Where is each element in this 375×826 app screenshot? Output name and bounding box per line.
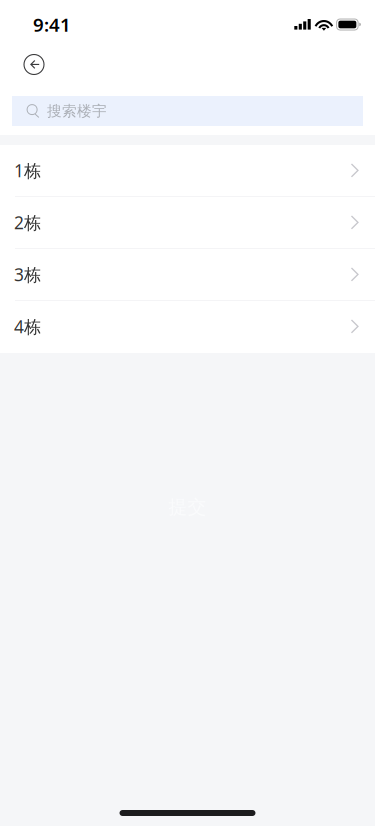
button[interactable]: 搜索楼宇 (12, 96, 363, 126)
staticText: 搜索楼宇 (47, 102, 107, 120)
button[interactable]: 2栋 (0, 197, 375, 249)
staticText: 9:41 (33, 12, 71, 37)
staticText: 3栋 (14, 263, 41, 286)
button[interactable]: 1栋 (0, 145, 375, 197)
staticText: 1栋 (14, 159, 41, 182)
button[interactable]: Back (12, 46, 56, 82)
button[interactable]: 3栋 (0, 249, 375, 301)
staticText: 4栋 (14, 315, 41, 338)
button[interactable]: 4栋 (0, 301, 375, 353)
staticText: 2栋 (14, 211, 41, 234)
